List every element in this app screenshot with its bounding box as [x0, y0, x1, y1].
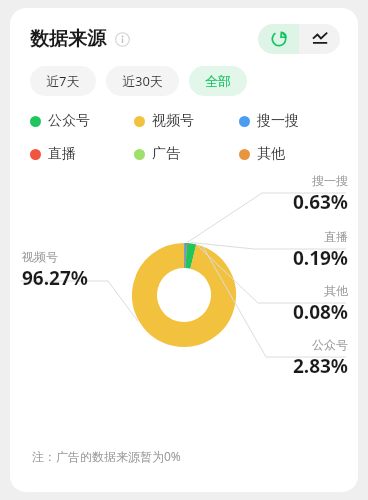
button[interactable]: 近7天	[30, 66, 96, 96]
staticText: 视频号	[22, 249, 58, 264]
staticText: 全部	[205, 73, 231, 89]
staticText: 直播	[48, 145, 76, 163]
staticText: 视频号	[152, 112, 194, 130]
staticText: 0.63%	[292, 189, 348, 215]
staticText: 其他	[324, 283, 348, 298]
staticText: 注：广告的数据来源暂为0%	[32, 448, 181, 464]
button[interactable]: 全部	[189, 66, 247, 96]
staticText: 0.08%	[292, 299, 348, 325]
button[interactable]: 饼图	[258, 24, 299, 54]
staticText: 直播	[324, 229, 348, 244]
staticText: 搜一搜	[257, 112, 299, 130]
staticText: 0.19%	[292, 245, 348, 271]
staticText: 近30天	[122, 72, 163, 90]
button[interactable]: 广告	[134, 145, 239, 163]
button[interactable]: 搜一搜	[239, 112, 344, 130]
staticText: 搜一搜	[312, 173, 348, 188]
button[interactable]: 其他	[239, 145, 344, 163]
button[interactable]: 视频号	[134, 112, 239, 130]
button[interactable]: 公众号	[30, 112, 134, 130]
staticText: 2.83%	[292, 353, 348, 379]
button[interactable]: 直播	[30, 145, 134, 163]
staticText: 96.27%	[22, 265, 88, 291]
button[interactable]: 说明	[115, 32, 130, 47]
button[interactable]: 近30天	[106, 66, 179, 96]
staticText: 广告	[152, 145, 180, 163]
button[interactable]: 折线图	[299, 24, 340, 54]
staticText: 数据来源	[30, 27, 106, 51]
staticText: 公众号	[312, 337, 348, 352]
staticText: 公众号	[48, 112, 90, 130]
staticText: 近7天	[46, 72, 80, 90]
staticText: 其他	[257, 145, 285, 163]
